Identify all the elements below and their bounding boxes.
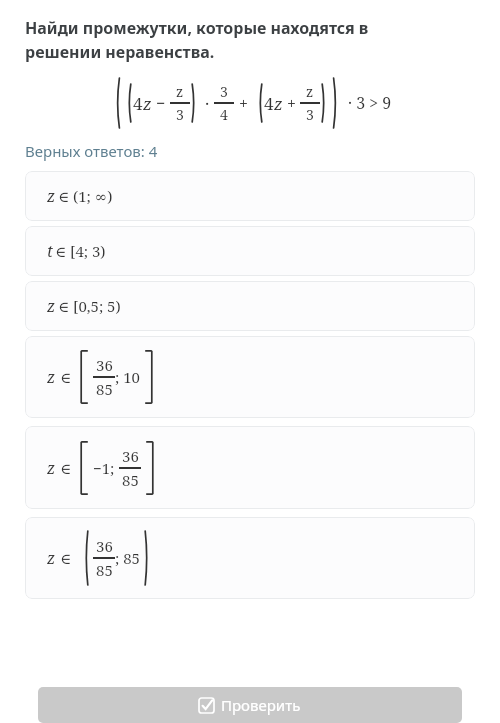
staticText: 85 (122, 470, 139, 490)
staticText: z (47, 366, 56, 388)
staticText: + (287, 92, 296, 114)
staticText: ∈ (1; ∞) (58, 186, 113, 206)
staticText: + (239, 92, 248, 114)
staticText: z (47, 185, 56, 207)
staticText: 36 (96, 536, 113, 556)
button[interactable]: z (25, 426, 475, 509)
staticText: z (143, 92, 152, 115)
staticText: z (306, 82, 314, 101)
staticText: 3 (220, 82, 228, 101)
button[interactable]: Check answer (38, 687, 462, 723)
staticText: Найди промежутки, которые находятся в ре… (25, 17, 369, 63)
staticText: z (47, 457, 56, 479)
staticText: −1; (93, 458, 119, 478)
staticText: 3 (176, 105, 184, 124)
button[interactable]: z (25, 336, 475, 418)
staticText: 4 (220, 105, 228, 124)
staticText: ∈ (60, 460, 72, 477)
button[interactable]: t (25, 226, 475, 276)
staticText: ; 10 (115, 367, 140, 387)
staticText: 4 (133, 92, 143, 115)
staticText: − (156, 92, 166, 114)
staticText: 4 (264, 92, 274, 115)
staticText: z (176, 82, 184, 101)
staticText: 85 (96, 560, 113, 580)
staticText: 85 (96, 379, 113, 399)
staticText: 3 (306, 105, 314, 124)
staticText: ∈ [4; 3) (55, 241, 106, 261)
staticText: ; 85 (115, 548, 140, 568)
button[interactable]: z (25, 281, 475, 331)
staticText: 36 (96, 355, 113, 375)
staticText: ∈ (60, 369, 72, 386)
staticText: z (274, 92, 283, 115)
button[interactable]: z (25, 517, 475, 599)
staticText: · (205, 92, 210, 115)
staticText: z (47, 295, 56, 317)
other: Check answer (199, 698, 214, 713)
staticText: ∈ [0,5; 5) (58, 296, 121, 316)
staticText: Проверить (221, 695, 301, 715)
staticText: ∈ (60, 550, 72, 567)
staticText: t (47, 240, 53, 262)
staticText: z (47, 547, 56, 569)
staticText: Верных ответов: 4 (25, 141, 158, 161)
staticText: 36 (122, 446, 139, 466)
button[interactable]: z (25, 171, 475, 221)
staticText: · 3 > 9 (348, 92, 392, 114)
